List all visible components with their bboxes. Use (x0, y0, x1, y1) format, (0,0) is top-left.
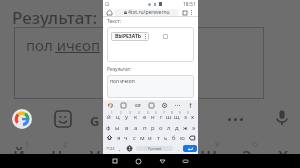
staticText: 1 (25, 140, 30, 150)
button[interactable]: Clipboard (148, 102, 155, 109)
staticText: 4 (138, 111, 140, 115)
staticText: 4txt.ru/perevernu (128, 9, 170, 16)
button[interactable]: г (157, 110, 165, 121)
button[interactable]: Comma (116, 144, 124, 153)
staticText: к (128, 142, 139, 168)
staticText: с (133, 134, 136, 142)
staticText: пол ичєоп (110, 78, 135, 85)
staticText: 1 (111, 111, 113, 115)
staticText: з (242, 142, 252, 168)
staticText: пол ичєоп (26, 35, 101, 55)
button[interactable]: Backspace (186, 132, 197, 143)
staticText: ВЫРЕЗАТЬ (115, 33, 142, 40)
button[interactable]: GIF (133, 101, 142, 110)
button[interactable]: Shift (104, 132, 115, 143)
button[interactable]: 4txt.ru/perevernu (114, 9, 179, 16)
button[interactable]: More (174, 102, 181, 109)
button[interactable]: ж (181, 121, 189, 132)
staticText: . (178, 145, 180, 153)
staticText: ?123 (106, 146, 115, 151)
staticText: 6 (155, 111, 157, 115)
button[interactable]: р (149, 121, 157, 132)
staticText: х (278, 142, 289, 168)
button[interactable]: я (115, 132, 122, 143)
button[interactable]: Sticker (120, 102, 127, 109)
staticText: г (160, 113, 163, 121)
button[interactable]: к (131, 110, 140, 121)
button[interactable]: щ (173, 110, 181, 121)
button[interactable]: Voice input (187, 102, 194, 109)
button[interactable]: ь (162, 132, 170, 143)
button[interactable]: Back (157, 156, 167, 166)
staticText: 8 (171, 111, 173, 115)
staticText: 2 (120, 111, 122, 115)
button[interactable]: ц (113, 110, 122, 121)
staticText: е (143, 113, 147, 121)
button[interactable]: н (149, 110, 157, 121)
staticText: ш (166, 113, 172, 121)
staticText: ы (115, 124, 120, 132)
button[interactable]: ю (178, 132, 186, 143)
button[interactable]: Tabs (181, 9, 188, 16)
button[interactable]: Home (106, 9, 113, 16)
staticText: ь (164, 134, 168, 142)
staticText: п (143, 124, 147, 132)
button[interactable]: и (146, 132, 154, 143)
staticText: к (134, 113, 138, 121)
button[interactable]: а (131, 121, 140, 132)
button[interactable]: х (189, 110, 197, 121)
button[interactable]: с (130, 132, 138, 143)
button[interactable]: Русский (136, 146, 173, 151)
button[interactable]: й (104, 110, 113, 121)
button[interactable]: м (138, 132, 146, 143)
staticText: GIF (135, 103, 141, 108)
staticText: Результат: (107, 66, 132, 73)
staticText: я (117, 134, 121, 142)
staticText: 2 (63, 140, 68, 150)
button[interactable]: ?123 (104, 144, 116, 153)
button[interactable]: б (170, 132, 178, 143)
button[interactable]: п (140, 121, 149, 132)
staticText: щ (200, 142, 218, 168)
button[interactable]: ы (113, 121, 122, 132)
button[interactable]: л (165, 121, 173, 132)
button[interactable]: ш (165, 110, 173, 121)
button[interactable]: д (173, 121, 181, 132)
button[interactable]: Google search (107, 102, 114, 109)
staticText: в (125, 124, 129, 132)
staticText: х (191, 113, 195, 121)
button[interactable]: Change language (124, 144, 134, 153)
button[interactable]: More options (188, 9, 195, 16)
button[interactable]: ВЫРЕЗАТЬ (111, 32, 149, 41)
staticText: 7 (163, 111, 165, 115)
staticText: м (140, 134, 145, 142)
staticText: ю (180, 134, 185, 142)
button[interactable]: е (140, 110, 149, 121)
button[interactable]: э (189, 121, 197, 132)
button[interactable]: з (181, 110, 189, 121)
staticText: Русский (148, 146, 162, 151)
button[interactable]: Period (175, 144, 183, 153)
staticText: т (157, 134, 160, 142)
button[interactable]: ч (122, 132, 130, 143)
staticText: , (119, 145, 121, 153)
button[interactable]: Recents (110, 156, 120, 166)
staticText: 9 (215, 140, 220, 150)
button[interactable]: Hide keyboard (180, 156, 190, 166)
staticText: щ (174, 113, 180, 121)
staticText: ц (116, 113, 120, 121)
button[interactable]: т (154, 132, 162, 143)
staticText: а (134, 124, 138, 132)
button[interactable]: ф (104, 121, 113, 132)
staticText: 0 (187, 111, 189, 115)
button[interactable]: Settings (161, 102, 168, 109)
staticText: й (107, 113, 111, 121)
button[interactable]: у (122, 110, 131, 121)
button[interactable]: Enter (183, 145, 197, 152)
button[interactable]: Home (133, 156, 143, 166)
button[interactable]: о (157, 121, 165, 132)
staticText: 3 (101, 140, 106, 150)
button[interactable]: Checkbox (163, 34, 168, 39)
button[interactable]: в (122, 121, 131, 132)
